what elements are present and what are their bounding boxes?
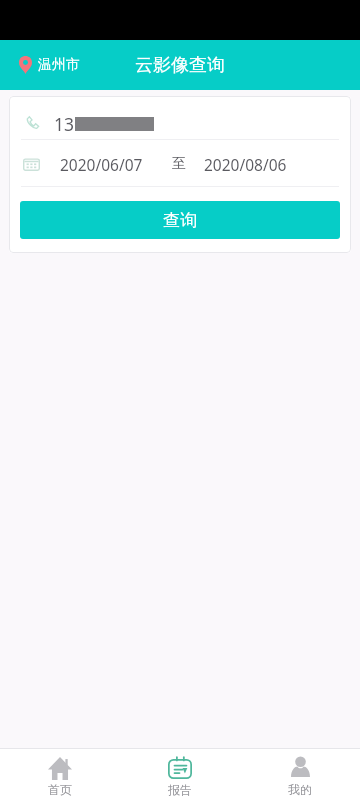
button[interactable]: 首页 [0, 748, 120, 800]
staticText: 查询 [163, 210, 197, 231]
button[interactable]: 2020/08/06 [197, 146, 307, 180]
button[interactable]: 报告 [120, 748, 240, 800]
staticText: 温州市 [38, 56, 80, 74]
button[interactable]: 查询 [20, 201, 340, 239]
staticText: 13 [54, 112, 75, 136]
button[interactable]: 2020/06/07 [53, 146, 163, 180]
staticText: 云影像查询 [135, 54, 225, 77]
staticText: 我的 [288, 782, 312, 797]
other: 选择日期 [23, 157, 40, 171]
button[interactable]: 温州市 [19, 56, 80, 74]
staticText: 报告 [168, 782, 192, 797]
button[interactable]: 手机号 13 [9, 96, 351, 139]
staticText: 2020/08/06 [204, 154, 287, 175]
button[interactable]: 我的 [240, 748, 360, 800]
staticText: 至 [172, 155, 186, 173]
staticText: 2020/06/07 [60, 154, 143, 175]
staticText: 首页 [48, 782, 72, 797]
